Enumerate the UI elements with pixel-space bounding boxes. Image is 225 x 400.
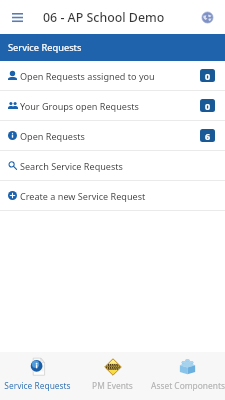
button[interactable]: Asset Components (150, 352, 225, 400)
button[interactable]: Sync (189, 0, 225, 34)
staticText: 6 (205, 130, 211, 142)
staticText: 06 - AP School Demo (43, 9, 165, 26)
button[interactable]: Search Service Requests (0, 151, 225, 180)
button[interactable]: Service Requests (0, 352, 75, 400)
button[interactable]: Open Requests (0, 121, 225, 150)
staticText: 0 (205, 70, 211, 82)
staticText: Search Service Requests (20, 160, 123, 172)
staticText: Service Requests (8, 41, 82, 54)
staticText: Your Groups open Requests (20, 100, 139, 112)
staticText: Open Requests assigned to you (20, 70, 155, 82)
button[interactable]: Open Requests assigned to you (0, 61, 225, 90)
staticText: Open Requests (20, 130, 85, 142)
button[interactable]: Navigation menu (0, 0, 34, 34)
staticText: Service Requests (4, 380, 71, 391)
staticText: Asset Components (151, 380, 225, 391)
staticText: Create a new Service Request (20, 190, 146, 202)
button[interactable]: PM Events (75, 352, 150, 400)
staticText: 0 (205, 100, 211, 112)
button[interactable]: Your Groups open Requests (0, 91, 225, 120)
staticText: PM Events (92, 380, 133, 391)
button[interactable]: Create a new Service Request (0, 181, 225, 210)
